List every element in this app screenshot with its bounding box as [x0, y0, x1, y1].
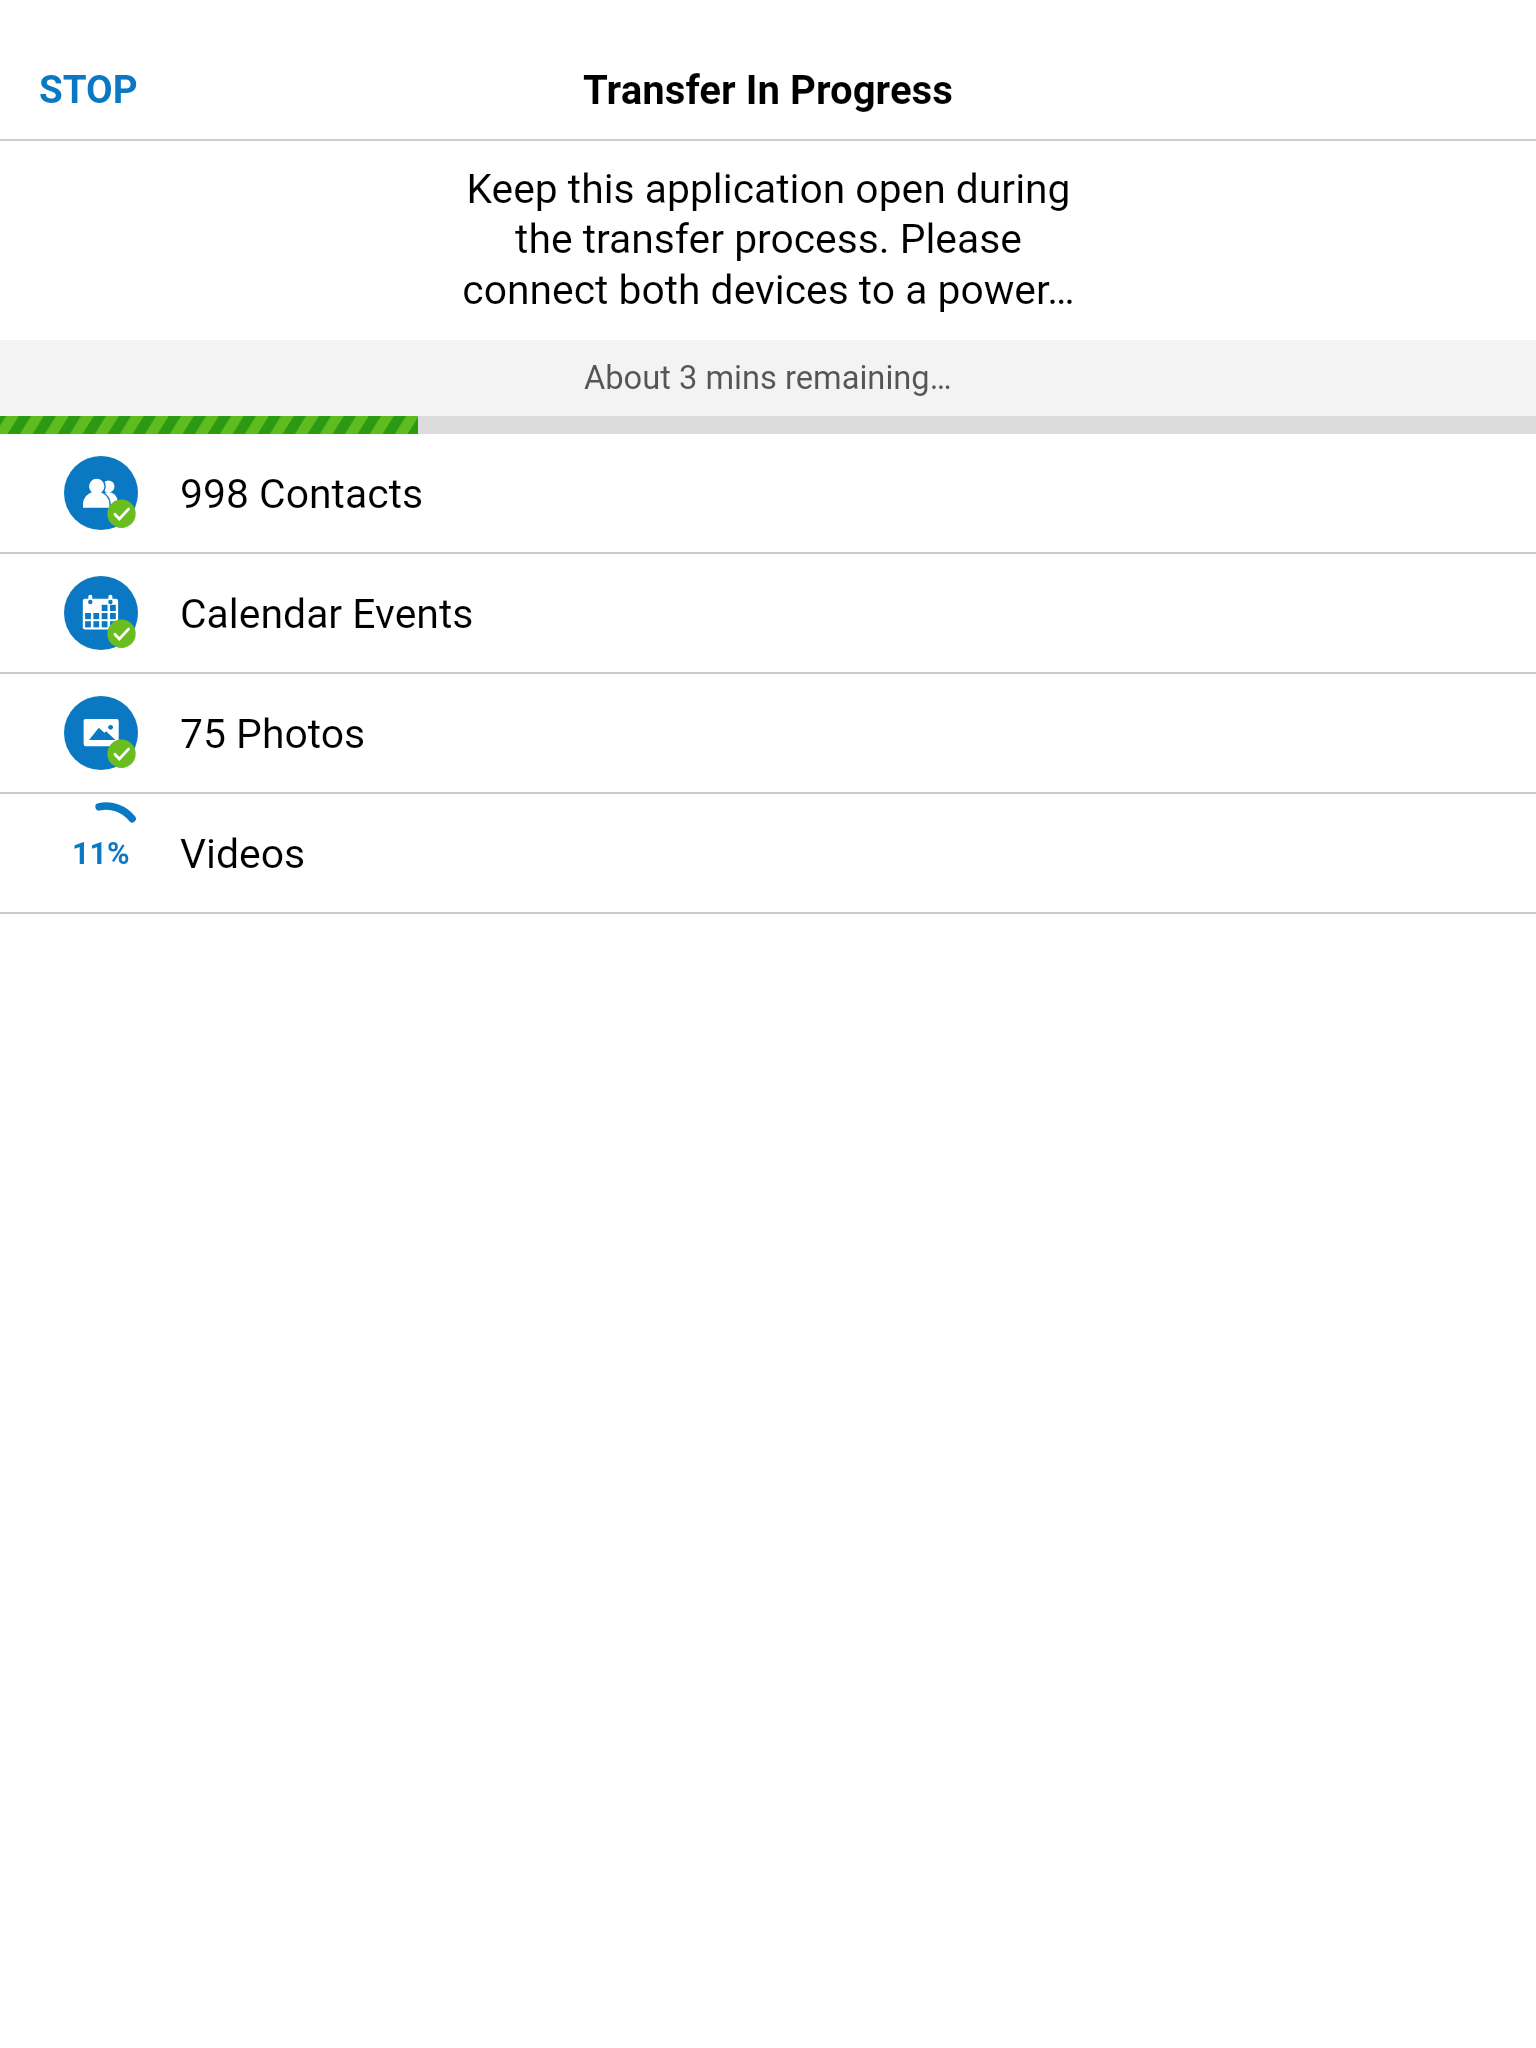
staticText: 75 Photos — [180, 710, 366, 758]
other: Transferring videos — [0, 794, 1536, 912]
button[interactable]: Calendar events transferred — [0, 554, 1536, 674]
other: Transfer progress 27 percent — [0, 416, 1536, 434]
staticText: Calendar Events — [180, 590, 474, 638]
staticText: 998 Contacts — [180, 470, 424, 518]
staticText: 11% — [72, 836, 130, 872]
other: Contacts transferred — [0, 434, 1536, 552]
button[interactable]: Contacts transferred — [0, 434, 1536, 554]
staticText: Keep this application open during the tr… — [462, 165, 1075, 314]
staticText: Transfer In Progress — [583, 67, 953, 114]
other: Photos transferred — [0, 674, 1536, 792]
button[interactable]: STOP — [39, 67, 138, 112]
button[interactable]: Photos transferred — [0, 674, 1536, 794]
staticText: STOP — [39, 67, 138, 112]
button[interactable]: Transferring videos — [0, 794, 1536, 914]
staticText: Videos — [180, 830, 306, 878]
staticText: About 3 mins remaining… — [584, 359, 952, 397]
other: Calendar events transferred — [0, 554, 1536, 672]
